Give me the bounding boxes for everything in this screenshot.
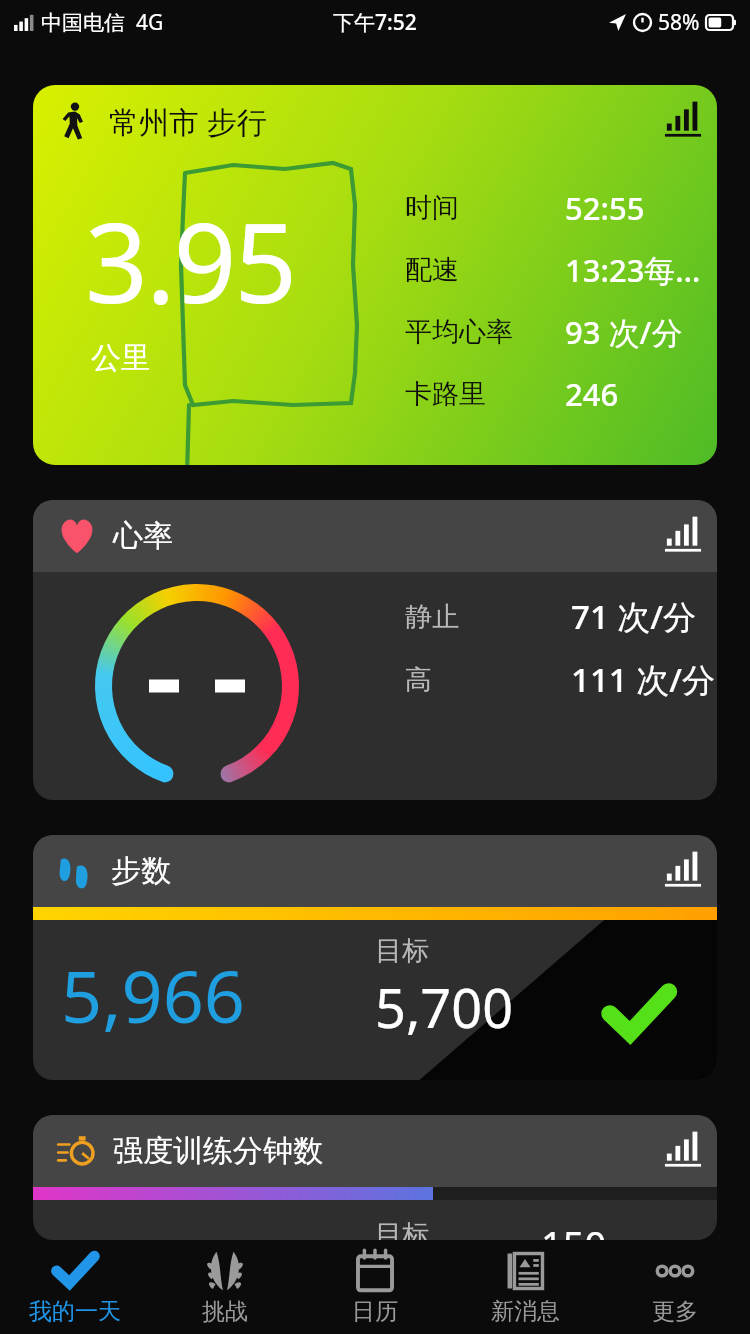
- staticText: 13:23每…: [565, 249, 701, 291]
- staticText: 目标: [375, 1218, 541, 1240]
- staticText: 日历: [352, 1297, 398, 1326]
- button[interactable]: View chart: [657, 845, 709, 897]
- staticText: 常州市 步行: [109, 101, 267, 142]
- staticText: 心率: [113, 517, 173, 555]
- staticText: 150: [541, 1218, 607, 1240]
- staticText: 52:55: [565, 187, 645, 229]
- button[interactable]: View chart: [657, 1125, 709, 1177]
- staticText: 246: [565, 373, 619, 415]
- button[interactable]: 步数: [33, 835, 717, 1080]
- staticText: 卡路里: [405, 377, 565, 411]
- staticText: 中国电信: [41, 10, 125, 36]
- staticText: 71 次/分: [571, 594, 697, 639]
- button[interactable]: 常州市 步行: [33, 85, 717, 465]
- staticText: 93 次/分: [565, 311, 683, 353]
- button[interactable]: 强度训练分钟数: [33, 1115, 717, 1240]
- staticText: 步数: [111, 852, 171, 890]
- button[interactable]: 挑战: [150, 1240, 300, 1334]
- staticText: 3.95: [85, 185, 296, 335]
- button[interactable]: 新消息: [450, 1240, 600, 1334]
- staticText: 挑战: [202, 1297, 248, 1326]
- staticText: 4G: [136, 8, 164, 37]
- staticText: 配速: [405, 253, 565, 287]
- staticText: 强度训练分钟数: [113, 1132, 323, 1170]
- button[interactable]: View chart: [657, 510, 709, 562]
- staticText: 新消息: [491, 1297, 560, 1326]
- staticText: 5,700: [375, 970, 514, 1044]
- staticText: 平均心率: [405, 315, 565, 349]
- staticText: 5,966: [61, 946, 246, 1044]
- staticText: 111 次/分: [571, 657, 715, 702]
- staticText: 高: [405, 663, 571, 697]
- button[interactable]: 心率: [33, 500, 717, 800]
- staticText: 更多: [652, 1297, 698, 1326]
- button[interactable]: 更多: [600, 1240, 750, 1334]
- button[interactable]: 我的一天: [0, 1240, 150, 1334]
- staticText: 公里: [91, 339, 151, 377]
- staticText: 静止: [405, 600, 571, 634]
- button[interactable]: 日历: [300, 1240, 450, 1334]
- staticText: 58%: [658, 8, 700, 37]
- staticText: 下午7:52: [333, 8, 417, 37]
- staticText: 目标: [375, 934, 429, 968]
- staticText: 我的一天: [29, 1297, 121, 1326]
- button[interactable]: View chart: [657, 95, 709, 147]
- staticText: 时间: [405, 191, 565, 225]
